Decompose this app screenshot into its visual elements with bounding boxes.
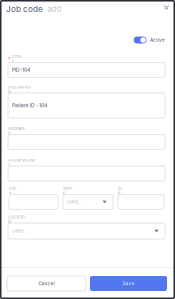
staticText: DESCRIPTION [8,85,31,94]
button[interactable]: Close [161,2,172,13]
staticText: Save [122,281,134,286]
staticText: Patient ID - 104 [12,102,47,108]
staticText: ZIP [118,186,122,196]
staticText: PID-104 [12,67,30,73]
staticText: ADDRESS LINE 2 [8,158,35,167]
staticText: add [48,4,62,13]
button[interactable]: Cancel [7,276,86,291]
staticText: ADDRESS [8,126,25,136]
staticText: Active [150,37,165,43]
staticText: LOCATION [8,215,26,224]
staticText: CODE [12,54,22,64]
staticText: Select... [67,199,81,205]
staticText: Job code [6,4,43,14]
button[interactable]: Save [90,276,167,291]
staticText: Select... [12,228,26,234]
staticText: STATE [63,186,72,196]
button[interactable]: Active [134,36,165,43]
staticText: * [8,56,11,62]
staticText: Cancel [38,281,54,286]
staticText: CITY [9,186,16,196]
